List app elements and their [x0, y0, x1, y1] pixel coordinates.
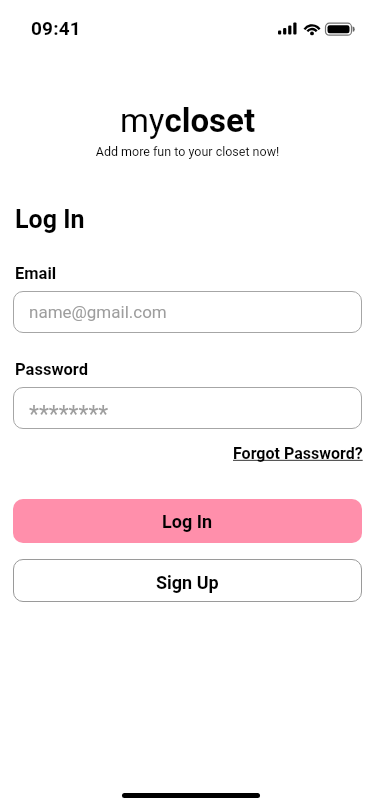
staticText: Add more fun to your closet now!: [0, 144, 375, 159]
staticText: ********: [29, 401, 109, 428]
staticText: mycloset: [0, 101, 375, 140]
button[interactable]: ********: [13, 387, 362, 429]
staticText: Log In: [15, 205, 85, 234]
staticText: Email: [15, 264, 57, 283]
button[interactable]: Log In: [13, 499, 362, 543]
staticText: 09:41: [31, 17, 81, 39]
staticText: name@gmail.com: [29, 302, 167, 322]
button[interactable]: name@gmail.com: [13, 291, 362, 333]
staticText: Log In: [162, 511, 213, 532]
button[interactable]: Sign Up: [13, 559, 362, 602]
staticText: Sign Up: [156, 572, 219, 593]
staticText: Password: [15, 360, 89, 379]
button[interactable]: Forgot Password?: [233, 444, 363, 463]
